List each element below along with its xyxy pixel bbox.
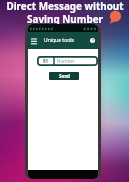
staticText: ? bbox=[92, 38, 94, 43]
button[interactable]: 91 bbox=[37, 56, 54, 66]
button[interactable]: Menu bbox=[30, 37, 38, 45]
staticText: Direct Message without bbox=[6, 0, 124, 12]
button[interactable]: Number bbox=[54, 56, 98, 66]
staticText: 91 bbox=[43, 58, 49, 64]
staticText: Number bbox=[57, 58, 75, 64]
staticText: Send bbox=[59, 73, 70, 79]
other: Chat bbox=[107, 9, 124, 26]
button[interactable]: Help bbox=[90, 38, 95, 43]
staticText: Unique tools bbox=[44, 37, 74, 44]
staticText: Saving Number bbox=[27, 12, 103, 25]
button[interactable]: Send bbox=[49, 72, 79, 80]
